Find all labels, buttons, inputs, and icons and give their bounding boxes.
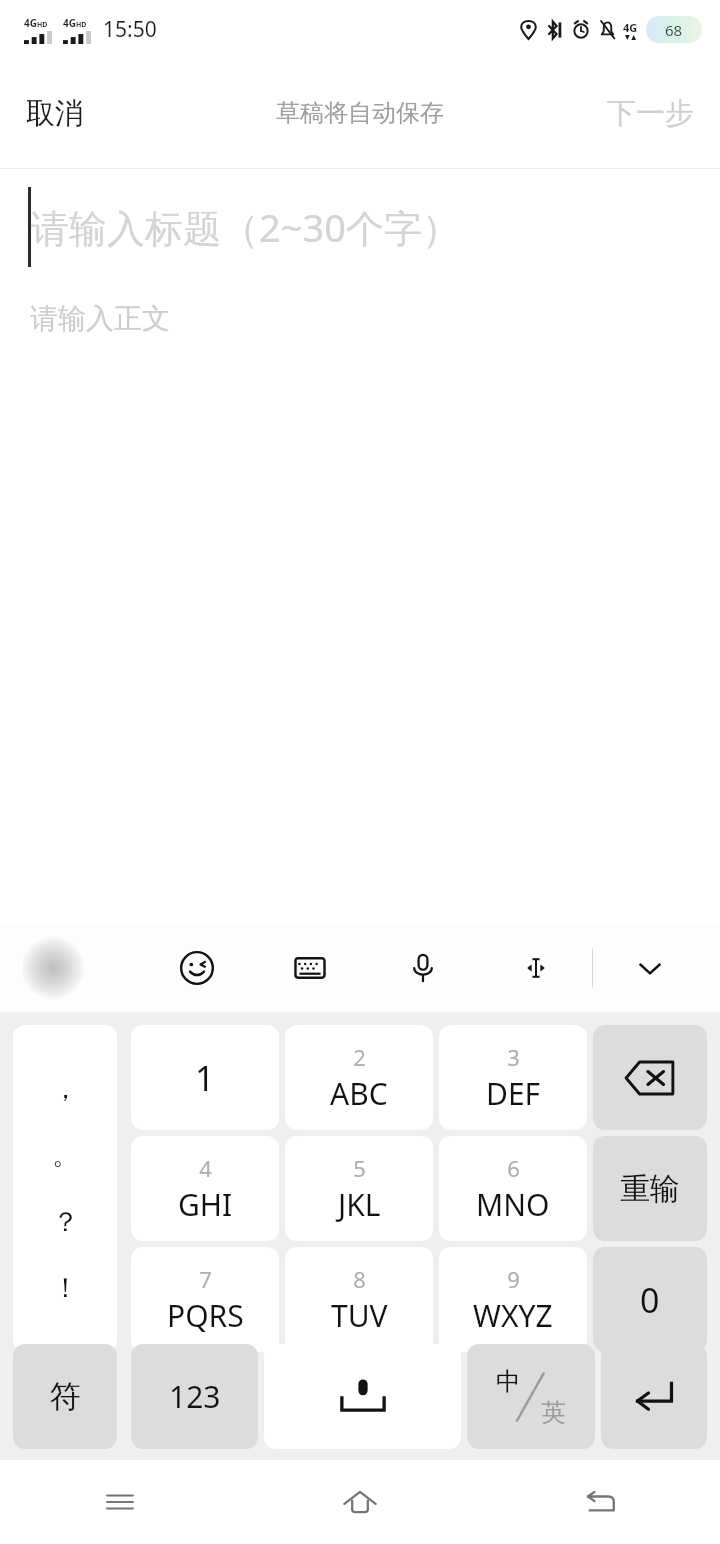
button[interactable]: Keyboard layout [253, 924, 366, 1012]
staticText: DEF [486, 1073, 541, 1114]
staticText: ！ [52, 1271, 79, 1305]
staticText: MNO [476, 1184, 550, 1225]
button[interactable]: Backspace [593, 1025, 707, 1130]
staticText: ， [52, 1072, 79, 1106]
staticText: 中 [496, 1366, 521, 1397]
staticText: 下一步 [607, 95, 694, 132]
button[interactable]: Back [480, 1460, 720, 1544]
staticText: 草稿将自动保存 [276, 98, 444, 128]
button[interactable]: 请输入标题（2~30个字） [0, 187, 720, 267]
button[interactable]: Home [240, 1460, 480, 1544]
staticText: 符 [50, 1377, 81, 1416]
staticText: 4G [623, 20, 638, 35]
button[interactable]: 请输入正文 [0, 295, 720, 336]
button[interactable]: 1 [131, 1025, 279, 1130]
staticText: 重输 [620, 1170, 680, 1208]
staticText: 1 [195, 1055, 215, 1101]
staticText: 6 [507, 1153, 520, 1183]
button[interactable]: 2 [285, 1025, 433, 1130]
button[interactable]: 5 [285, 1136, 433, 1241]
staticText: HD [37, 20, 48, 30]
button[interactable]: Enter [601, 1344, 707, 1449]
staticText: 0 [640, 1277, 660, 1323]
button[interactable]: 重输 [593, 1136, 707, 1241]
staticText: 5 [353, 1153, 366, 1183]
staticText: 。 [52, 1138, 79, 1172]
staticText: 4 [199, 1153, 212, 1183]
button[interactable]: Space, voice input [264, 1344, 461, 1449]
button[interactable]: ， [13, 1025, 117, 1352]
staticText: HD [76, 20, 87, 30]
staticText: 2 [353, 1042, 366, 1072]
staticText: ABC [330, 1073, 388, 1114]
button[interactable]: 9 [439, 1247, 587, 1352]
button[interactable]: 取消 [0, 81, 110, 146]
staticText: PQRS [167, 1295, 244, 1336]
staticText: 取消 [26, 95, 84, 132]
button[interactable]: 0 [593, 1247, 707, 1352]
staticText: 请输入标题（2~30个字） [31, 201, 460, 253]
staticText: 15:50 [103, 15, 157, 44]
staticText: GHI [178, 1184, 233, 1225]
staticText: 68 [665, 20, 683, 40]
staticText: 7 [199, 1264, 212, 1294]
button[interactable]: Recents [0, 1460, 240, 1544]
button[interactable]: 符 [13, 1344, 117, 1449]
button[interactable]: 8 [285, 1247, 433, 1352]
button[interactable]: 123 [131, 1344, 258, 1449]
staticText: 3 [507, 1042, 520, 1072]
button[interactable]: Move cursor [479, 924, 592, 1012]
staticText: JKL [338, 1184, 381, 1225]
button[interactable]: 4 [131, 1136, 279, 1241]
staticText: 8 [353, 1264, 366, 1294]
staticText: 英 [541, 1397, 566, 1428]
staticText: ？ [52, 1205, 79, 1239]
button[interactable]: 7 [131, 1247, 279, 1352]
button[interactable]: 6 [439, 1136, 587, 1241]
button[interactable]: Hide keyboard [593, 924, 706, 1012]
staticText: 4G [63, 16, 76, 30]
staticText: 123 [169, 1376, 221, 1417]
button[interactable]: 下一步 [581, 81, 720, 146]
staticText: WXYZ [473, 1295, 553, 1336]
staticText: 4G [24, 16, 37, 30]
staticText: TUV [331, 1295, 388, 1336]
staticText: 9 [507, 1264, 520, 1294]
button[interactable]: Emoji [140, 924, 253, 1012]
staticText: 请输入正文 [30, 301, 170, 336]
button[interactable]: Chinese English toggle [467, 1344, 595, 1449]
button[interactable]: 3 [439, 1025, 587, 1130]
button[interactable]: Voice input [366, 924, 479, 1012]
